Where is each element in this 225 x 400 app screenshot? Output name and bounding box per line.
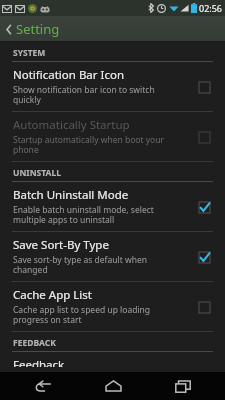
button[interactable]: Automatically Startup [0, 112, 225, 161]
staticText: Batch Uninstall Mode [13, 187, 129, 203]
staticText: Cache App List [13, 287, 92, 303]
staticText: Feedback [13, 357, 65, 367]
staticText: Enable batch uninstall mode, select mult… [13, 204, 154, 226]
staticText: Setting [16, 20, 60, 38]
staticText: Notification Bar Icon [13, 67, 125, 83]
button[interactable]: Checked [193, 196, 215, 218]
button[interactable]: Unchecked [193, 76, 215, 98]
staticText: Save Sort-By Type [13, 237, 109, 253]
button[interactable]: Cache App List [0, 282, 225, 331]
staticText: 02:56 [199, 2, 223, 14]
button[interactable]: Unchecked [193, 296, 215, 318]
staticText: Automatically Startup [13, 117, 130, 133]
staticText: FEEDBACK [13, 337, 56, 349]
button[interactable]: Notification Bar Icon [0, 62, 225, 111]
button[interactable]: Unchecked [193, 126, 215, 148]
button[interactable]: Home [85, 372, 141, 400]
staticText: Cache app list to speed up loading progr… [13, 304, 151, 326]
staticText: Startup automatically when boot your pho… [13, 134, 164, 156]
button[interactable]: Save Sort-By Type [0, 232, 225, 281]
button[interactable]: Back [14, 372, 70, 400]
button[interactable]: Recent apps [155, 372, 211, 400]
button[interactable]: Checked [193, 246, 215, 268]
staticText: Save sort-by type as default when change… [13, 254, 147, 276]
staticText: Show notification bar icon to switch qui… [13, 84, 155, 106]
button[interactable]: Batch Uninstall Mode [0, 182, 225, 231]
staticText: UNINSTALL [13, 167, 61, 179]
button[interactable]: Back to previous screen [0, 16, 225, 42]
staticText: SYSTEM [13, 47, 46, 59]
button[interactable]: Feedback [0, 352, 225, 372]
